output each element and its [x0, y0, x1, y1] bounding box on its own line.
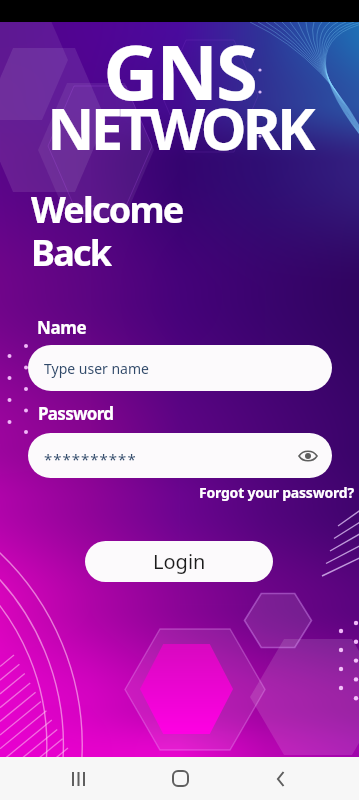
button[interactable]: Type user name [28, 345, 332, 391]
staticText: Welcome [31, 185, 183, 234]
staticText: GNS [0, 19, 359, 123]
button[interactable]: Recents [54, 757, 102, 800]
staticText: NETWORK [0, 88, 359, 167]
button[interactable]: Home [156, 757, 204, 800]
staticText: Login [153, 548, 206, 575]
staticText: Back [31, 228, 111, 277]
button[interactable]: Login [85, 541, 273, 582]
staticText: Name [37, 316, 87, 339]
button[interactable]: Forgot your password? [199, 483, 354, 502]
staticText: Type user name [44, 359, 149, 378]
button[interactable]: Show password [296, 444, 320, 468]
button[interactable]: ********** [28, 433, 332, 478]
button[interactable]: Back [257, 757, 305, 800]
staticText: Password [38, 402, 114, 425]
staticText: ********** [44, 449, 137, 469]
